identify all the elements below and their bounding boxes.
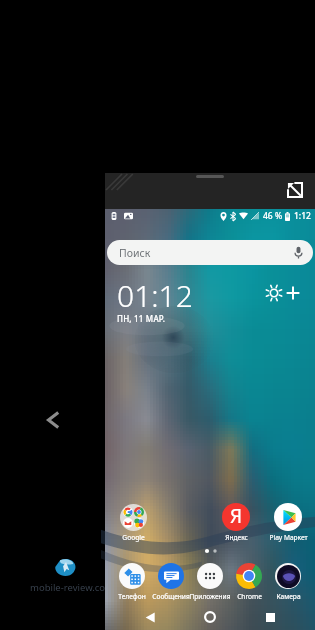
staticText: Яндекс [225,533,248,542]
staticText: Я [230,503,243,529]
button[interactable]: Приложения [186,562,234,601]
staticText: Google [122,533,145,542]
button[interactable]: Google [109,503,157,542]
staticText: Приложения [189,592,231,601]
button[interactable]: Home [196,603,224,630]
button[interactable]: Play Маркет [264,503,312,542]
button[interactable]: Add widget [285,285,301,301]
staticText: Chrome [237,592,262,601]
staticText: 01:12 [117,275,193,316]
staticText: Камера [276,592,301,601]
button[interactable]: Поиск [107,240,313,265]
button[interactable]: Chrome [225,562,273,601]
button[interactable]: Я [212,503,260,542]
staticText: Play Маркет [269,533,308,542]
staticText: ПН, 11 МАР. [117,313,166,324]
staticText: mobile-review.com [30,581,114,594]
button[interactable]: Back [136,603,164,630]
button[interactable]: Weather [266,285,282,301]
staticText: Телефон [118,592,146,601]
staticText: 46 % [263,210,283,222]
button[interactable]: Камера [264,562,312,601]
button[interactable]: Open full size image [287,182,303,198]
button[interactable]: Сообщения [147,562,195,601]
staticText: 1:12 [294,210,311,222]
button[interactable]: Recent apps [256,603,284,630]
staticText: Сообщения [152,592,190,601]
button[interactable]: Previous [38,406,67,434]
button[interactable]: Телефон [108,562,156,601]
staticText: Поиск [119,246,151,260]
